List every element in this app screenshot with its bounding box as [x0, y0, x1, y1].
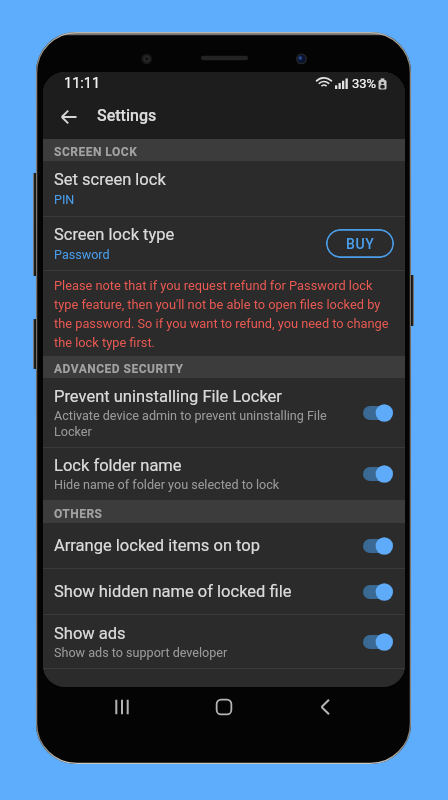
staticText: OTHERS	[54, 507, 103, 521]
staticText: Show hidden name of locked file	[54, 582, 292, 601]
staticText: Hide name of folder you selected to lock	[54, 477, 280, 492]
button[interactable]: Recent apps	[99, 684, 145, 730]
button[interactable]: Prevent uninstalling File Locker	[43, 378, 405, 447]
button[interactable]: Back	[303, 684, 349, 730]
button[interactable]: Toggle: Show hidden name of locked file	[363, 581, 393, 603]
button[interactable]: Lock folder name	[43, 448, 405, 500]
staticText: Please note that if you request refund f…	[54, 278, 394, 350]
button[interactable]: BUY	[326, 229, 394, 258]
button[interactable]: Screen lock type	[43, 217, 405, 270]
button[interactable]: Toggle: Lock folder name	[363, 463, 393, 485]
staticText: Show ads to support developer	[54, 645, 228, 660]
button[interactable]: Toggle: Prevent uninstalling File Locker	[363, 402, 393, 424]
staticText: Password	[54, 247, 110, 262]
staticText: Set screen lock	[54, 170, 166, 189]
button[interactable]: Toggle: Show ads	[363, 631, 393, 653]
button[interactable]: Arrange locked items on top	[43, 523, 405, 568]
staticText: PIN	[54, 192, 75, 207]
staticText: Settings	[97, 106, 157, 125]
button[interactable]: Show hidden name of locked file	[43, 569, 405, 614]
staticText: Show ads	[54, 624, 126, 643]
staticText: 11:11	[64, 75, 101, 92]
staticText: ADVANCED SECURITY	[54, 362, 184, 376]
button[interactable]: Home	[201, 684, 247, 730]
staticText: Arrange locked items on top	[54, 536, 260, 555]
staticText: Activate device admin to prevent uninsta…	[54, 408, 327, 439]
staticText: SCREEN LOCK	[54, 145, 138, 159]
staticText: 33%	[352, 76, 377, 91]
staticText: Lock folder name	[54, 456, 182, 475]
button[interactable]: Set screen lock	[43, 161, 405, 216]
staticText: BUY	[346, 236, 375, 252]
staticText: Prevent uninstalling File Locker	[54, 387, 282, 406]
button[interactable]: Navigate back	[43, 92, 91, 139]
button[interactable]: Toggle: Arrange locked items on top	[363, 535, 393, 557]
staticText: Screen lock type	[54, 225, 175, 244]
button[interactable]: Show ads	[43, 615, 405, 668]
